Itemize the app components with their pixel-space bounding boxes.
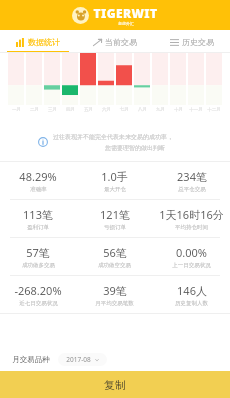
staticText: 总平仓交易 <box>178 186 206 193</box>
staticText: 亏损订单 <box>104 224 126 231</box>
staticText: 十一月 <box>189 107 203 113</box>
staticText: 121笔 <box>100 207 130 222</box>
staticText: 1.0手 <box>101 169 128 184</box>
staticText: 五月 <box>84 107 93 113</box>
staticText: 七月 <box>120 107 129 113</box>
staticText: 成功做空交易 <box>98 262 131 269</box>
staticText: 234笔 <box>177 169 207 184</box>
staticText: 一月 <box>12 107 21 113</box>
button[interactable]: 39笔 <box>76 283 153 307</box>
staticText: 当前交易 <box>105 37 137 47</box>
staticText: 数据统计 <box>28 37 60 47</box>
staticText: 146人 <box>177 283 207 298</box>
staticText: 月平均交易笔数 <box>95 300 134 307</box>
staticText: 二月 <box>30 107 39 113</box>
staticText: 历史交易 <box>182 37 214 47</box>
staticText: 平均持仓时间 <box>175 224 208 231</box>
staticText: 老虎外汇 <box>118 21 134 26</box>
staticText: -268.20% <box>14 283 62 298</box>
staticText: 十二月 <box>207 107 221 113</box>
staticText: 历史复制人数 <box>175 300 208 307</box>
staticText: 六月 <box>102 107 111 113</box>
staticText: 三月 <box>48 107 57 113</box>
staticText: 月交易品种 <box>12 355 50 364</box>
staticText: 113笔 <box>23 207 53 222</box>
staticText: TIGERWIT <box>93 5 158 21</box>
button[interactable]: 0.00% <box>153 245 230 269</box>
staticText: 盈利订单 <box>27 224 49 231</box>
staticText: 成功做多交易 <box>22 262 55 269</box>
other: Information <box>38 137 48 147</box>
button[interactable]: 56笔 <box>76 245 153 269</box>
button[interactable]: 历史交易 <box>153 30 230 53</box>
staticText: 复制 <box>104 378 126 392</box>
button[interactable]: 当前交易 <box>76 30 153 53</box>
staticText: 八月 <box>138 107 147 113</box>
staticText: 四月 <box>66 107 75 113</box>
button[interactable]: 146人 <box>153 283 230 307</box>
button[interactable]: -268.20% <box>0 283 76 307</box>
button[interactable]: 234笔 <box>153 169 230 193</box>
staticText: 2017-08 <box>66 355 91 364</box>
button[interactable]: 113笔 <box>0 207 76 231</box>
button[interactable]: 2017-08 <box>58 353 107 366</box>
button[interactable]: 复制 <box>0 371 230 398</box>
button[interactable]: 1天16时16分 <box>153 207 230 231</box>
staticText: 最大开仓 <box>104 186 126 193</box>
button[interactable]: 57笔 <box>0 245 76 269</box>
staticText: 57笔 <box>26 245 50 260</box>
staticText: 十月 <box>174 107 183 113</box>
staticText: 1天16时16分 <box>159 207 224 222</box>
staticText: 上一日交易状况 <box>172 262 211 269</box>
button[interactable]: 1.0手 <box>76 169 153 193</box>
button[interactable]: 48.29% <box>0 169 76 193</box>
staticText: 九月 <box>156 107 165 113</box>
staticText: 过往表现并不能完全代表未来交易的成功率， <box>53 133 173 141</box>
staticText: 0.00% <box>176 245 207 260</box>
staticText: 您需要理智的做出判断 <box>105 144 165 152</box>
staticText: 39笔 <box>103 283 127 298</box>
staticText: 近七日交易状况 <box>19 300 58 307</box>
button[interactable]: 121笔 <box>76 207 153 231</box>
staticText: 48.29% <box>19 169 57 184</box>
button[interactable]: 数据统计 <box>0 30 76 53</box>
staticText: 56笔 <box>103 245 127 260</box>
staticText: 准确率 <box>30 186 47 193</box>
